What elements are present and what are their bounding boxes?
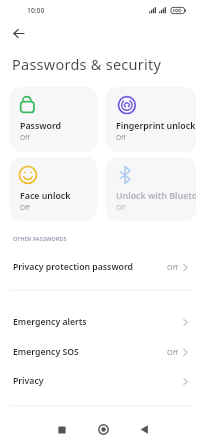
staticText: Passwords & security <box>12 54 162 74</box>
staticText: Off <box>20 133 30 142</box>
staticText: Face unlock <box>20 190 71 202</box>
button[interactable]: Emergency alerts <box>0 308 205 336</box>
staticText: Off <box>167 347 178 357</box>
button[interactable]: Face unlock <box>10 157 97 221</box>
button[interactable]: Privacy <box>0 367 205 395</box>
staticText: Off <box>167 262 178 272</box>
staticText: Unlock with Bluetooth <box>116 190 196 202</box>
staticText: Off <box>116 133 126 142</box>
staticText: Privacy protection password <box>13 261 133 273</box>
button[interactable]: Password <box>10 87 97 152</box>
button[interactable] <box>10 26 28 42</box>
staticText: Fingerprint unlock <box>116 120 196 132</box>
staticText: Privacy <box>13 375 44 387</box>
staticText: Emergency alerts <box>13 316 87 328</box>
staticText: Password <box>20 120 62 132</box>
button[interactable]: Fingerprint unlock <box>106 87 196 152</box>
button[interactable] <box>41 413 82 446</box>
button[interactable] <box>83 413 124 446</box>
button[interactable]: Unlock with Bluetooth <box>106 157 196 221</box>
staticText: Emergency SOS <box>13 346 79 358</box>
staticText: Off <box>20 203 30 212</box>
button[interactable]: Emergency SOS <box>0 338 205 366</box>
staticText: OTHER PASSWORDS <box>13 235 67 242</box>
button[interactable]: Privacy protection password <box>0 253 205 281</box>
button[interactable] <box>124 413 165 446</box>
staticText: 10:00 <box>27 6 45 15</box>
staticText: Off <box>116 203 126 212</box>
